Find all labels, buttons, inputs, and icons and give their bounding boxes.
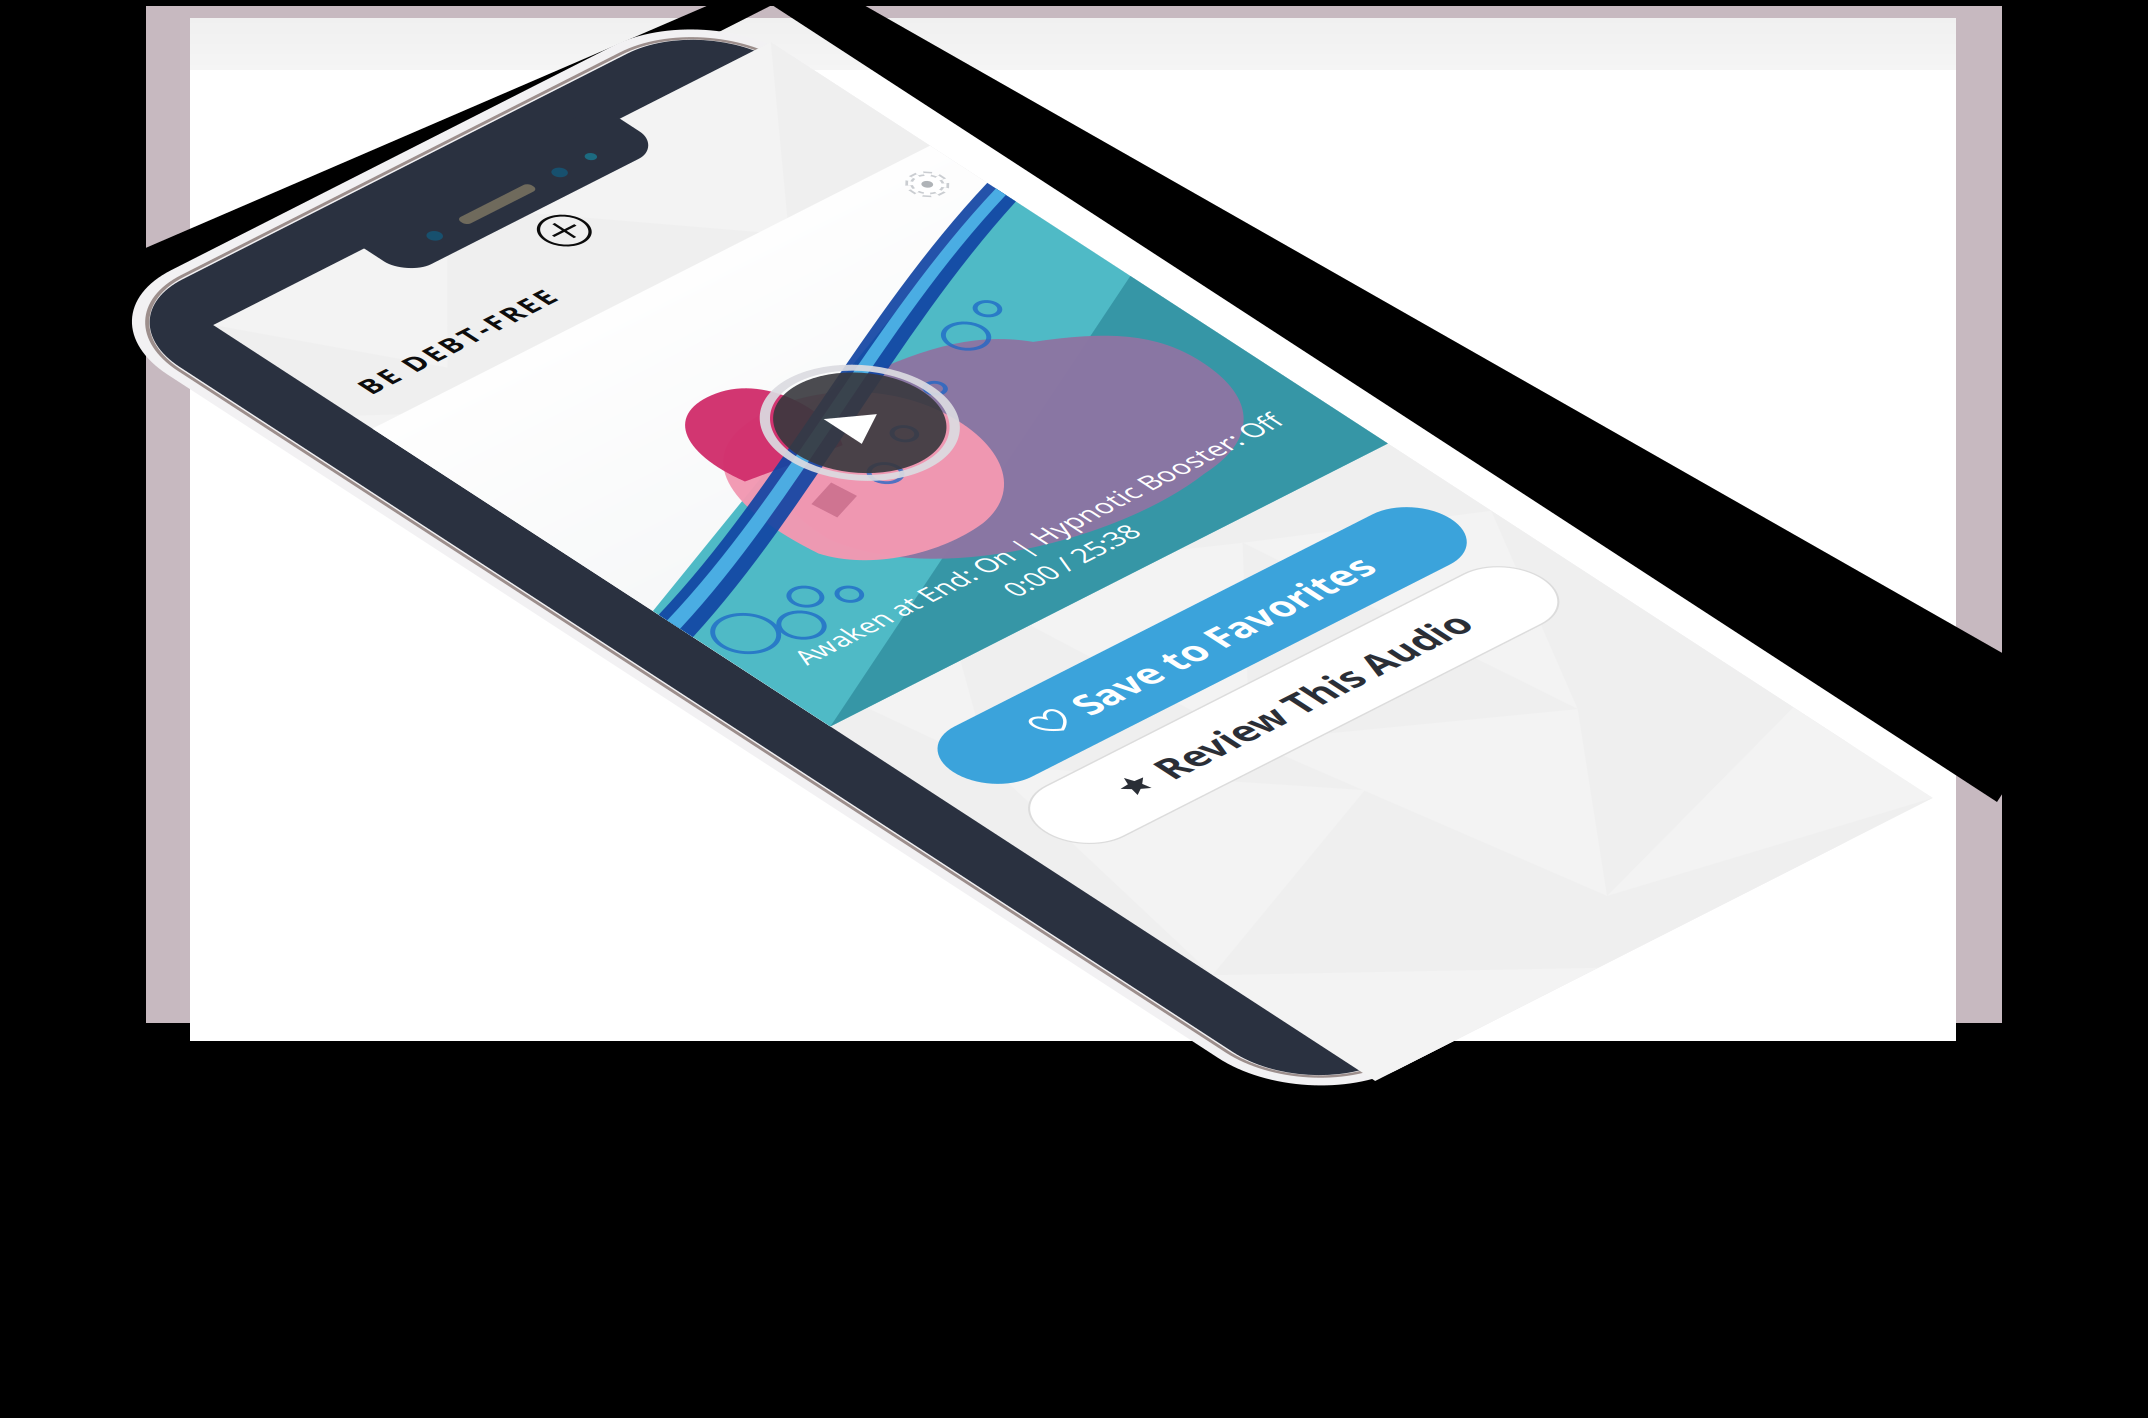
button[interactable]: Review This Audio — [20, 533, 355, 587]
button[interactable]: Add — [175, 38, 200, 63]
staticText: Review This Audio — [98, 545, 302, 575]
button[interactable]: Save to Favorites — [20, 469, 355, 523]
staticText: Awaken at End: On | Hypnotic Booster: Of… — [26, 371, 348, 392]
staticText: Save to Favorites — [104, 481, 298, 511]
staticText: 0:00 / 25:38 — [145, 394, 230, 415]
